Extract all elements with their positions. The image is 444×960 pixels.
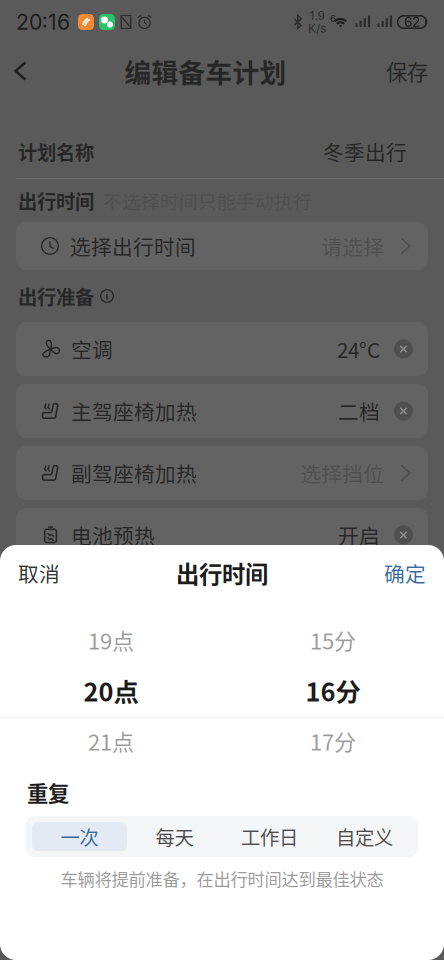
staticText: 每天 <box>155 822 193 850</box>
staticText: 1.9 <box>309 8 324 23</box>
staticText: 重复 <box>27 777 69 808</box>
button[interactable]: 自定义 <box>317 822 412 851</box>
button[interactable]: Back <box>0 44 41 98</box>
button[interactable]: 取消 <box>0 545 78 601</box>
staticText: 出行时间 <box>18 186 94 214</box>
button[interactable]: 主驾座椅加热 <box>16 384 428 438</box>
staticText: 20点 <box>83 672 138 709</box>
staticText: 保存 <box>386 56 428 86</box>
staticText: 选择挡位 <box>300 458 384 488</box>
staticText: 主驾座椅加热 <box>71 396 197 426</box>
button[interactable]: 每天 <box>127 822 222 851</box>
staticText: 请选择 <box>321 231 384 261</box>
staticText: 开启 <box>338 520 380 550</box>
button[interactable]: 确定 <box>366 545 444 601</box>
staticText: 16分 <box>305 672 360 709</box>
staticText: 出行时间 <box>176 556 268 590</box>
staticText: K/s <box>308 21 326 35</box>
button[interactable]: 电池预热 <box>16 508 428 562</box>
staticText: 15分 <box>310 624 356 656</box>
staticText: 空调 <box>71 334 113 364</box>
button[interactable]: 工作日 <box>222 822 317 851</box>
staticText: 电池预热 <box>71 520 155 550</box>
button[interactable]: 一次 <box>32 822 127 851</box>
staticText: 副驾座椅加热 <box>71 458 197 488</box>
staticText: 出行准备 <box>18 282 94 310</box>
staticText: 6 <box>330 13 336 24</box>
staticText: 一次 <box>60 822 98 850</box>
button[interactable]: 计划名称 <box>0 125 444 178</box>
staticText: 编辑备车计划 <box>124 52 286 90</box>
staticText: 24°C <box>337 334 380 364</box>
staticText: 62 <box>404 14 420 30</box>
button[interactable]: 副驾座椅加热 <box>16 446 428 500</box>
staticText: 17分 <box>310 725 356 757</box>
staticText: 确定 <box>384 558 426 588</box>
staticText: 21点 <box>88 725 134 757</box>
staticText: 计划名称 <box>18 137 94 165</box>
staticText: 自定义 <box>336 822 393 850</box>
staticText: 19点 <box>88 624 134 656</box>
button[interactable]: 保存 <box>370 44 444 98</box>
staticText: 20:16 <box>16 9 70 35</box>
staticText: 车辆将提前准备，在出行时间达到最佳状态 <box>60 866 383 891</box>
staticText: 二档 <box>338 396 380 426</box>
staticText: 不选择时间只能手动执行 <box>103 187 312 214</box>
staticText: 取消 <box>18 558 60 588</box>
staticText: 冬季出行 <box>323 136 407 166</box>
staticText: 工作日 <box>241 822 298 850</box>
staticText: 选择出行时间 <box>70 231 196 261</box>
button[interactable]: 选择出行时间 <box>16 222 428 270</box>
button[interactable]: 空调 <box>16 322 428 376</box>
